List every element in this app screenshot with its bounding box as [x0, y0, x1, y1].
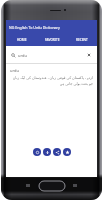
staticText: اردو ، پاکستان کی قومی زبان ، ہندوستان ک… — [10, 75, 93, 86]
staticText: HOME — [17, 38, 27, 42]
staticText: urdu — [18, 53, 27, 58]
button[interactable]: HOME — [6, 34, 37, 46]
staticText: urdu — [10, 68, 19, 73]
button[interactable]: Clear — [87, 53, 91, 57]
button[interactable]: Save — [43, 148, 51, 156]
button[interactable]: Listen — [33, 148, 41, 156]
button[interactable]: Favorite — [63, 148, 71, 156]
button[interactable]: Share — [53, 148, 61, 156]
button[interactable]: FAVORITE — [37, 34, 67, 46]
staticText: FAVORITE — [45, 38, 60, 42]
staticText: RECENT — [76, 38, 88, 42]
staticText: NG English To Urdu Dictionary — [9, 25, 60, 30]
button[interactable]: RECENT — [67, 34, 97, 46]
button[interactable]: Home — [39, 181, 65, 191]
